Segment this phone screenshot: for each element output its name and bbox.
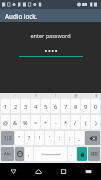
button[interactable]: +	[41, 115, 50, 129]
button[interactable]: Space	[34, 147, 67, 161]
staticText: 8	[74, 103, 78, 110]
button[interactable]: "	[15, 131, 24, 145]
button[interactable]: Done	[77, 147, 87, 161]
staticText: 6	[54, 103, 58, 110]
staticText: /	[74, 119, 77, 126]
staticText: 1	[4, 103, 8, 110]
staticText: 0	[94, 103, 98, 110]
button[interactable]: 6	[51, 99, 60, 113]
staticText: -	[55, 119, 57, 126]
staticText: 5	[44, 103, 48, 110]
button[interactable]: 7	[61, 99, 70, 113]
staticText: :	[59, 135, 61, 142]
staticText: ?	[28, 135, 31, 142]
staticText: !	[55, 93, 57, 98]
button[interactable]: ;	[65, 131, 74, 145]
button[interactable]: ,	[25, 147, 33, 161]
button[interactable]: *	[61, 115, 70, 129]
staticText: .	[71, 151, 73, 158]
button[interactable]: -	[51, 115, 60, 129]
staticText: %	[23, 119, 28, 126]
staticText: Abc	[4, 151, 12, 157]
button[interactable]: Symbols	[1, 131, 14, 145]
staticText: &	[13, 119, 18, 126]
staticText: 2	[14, 103, 18, 110]
staticText: 3	[24, 103, 28, 110]
staticText: 4	[34, 103, 38, 110]
button[interactable]: 9	[81, 99, 90, 113]
staticText: +	[44, 119, 48, 126]
staticText: enter password	[30, 32, 71, 39]
button[interactable]: Keyboard	[76, 163, 101, 180]
button[interactable]: =	[31, 115, 40, 129]
staticText: $	[95, 93, 98, 98]
button[interactable]: 3	[21, 99, 30, 113]
staticText: 7	[64, 103, 68, 110]
button[interactable]: )	[91, 115, 100, 129]
staticText: @	[74, 93, 78, 98]
staticText: 1|2	[4, 135, 12, 141]
button[interactable]: Recents	[51, 163, 76, 180]
staticText: "	[18, 135, 21, 142]
button[interactable]: &	[11, 115, 20, 129]
staticText: Audio lock.	[5, 12, 38, 20]
staticText: ?	[35, 93, 37, 98]
staticText: ,	[28, 151, 30, 158]
button[interactable]: Audio lock.	[0, 9, 101, 22]
button[interactable]: ?	[25, 131, 34, 145]
staticText: =	[34, 119, 38, 126]
button[interactable]: Backspace	[85, 131, 100, 145]
button[interactable]: (	[81, 115, 90, 129]
button[interactable]: Settings	[88, 147, 100, 161]
button[interactable]: Emoji	[15, 147, 24, 161]
button[interactable]: 4	[31, 99, 40, 113]
button[interactable]	[19, 48, 83, 57]
staticText: )	[95, 119, 97, 126]
staticText: _	[78, 135, 81, 142]
button[interactable]: 1	[1, 99, 10, 113]
button[interactable]: /	[71, 115, 80, 129]
staticText: @	[3, 119, 8, 126]
staticText: *	[64, 119, 68, 126]
staticText: 9	[84, 103, 88, 110]
staticText: !	[39, 135, 41, 142]
button[interactable]: %	[21, 115, 30, 129]
staticText: ·	[15, 93, 17, 98]
staticText: ;	[69, 135, 71, 142]
button[interactable]: Home	[26, 163, 51, 180]
button[interactable]: .	[68, 147, 76, 161]
button[interactable]: Back	[0, 163, 26, 180]
staticText: '	[49, 135, 51, 142]
button[interactable]: :	[55, 131, 64, 145]
button[interactable]: 8	[71, 99, 80, 113]
button[interactable]: 0	[91, 99, 100, 113]
staticText: (	[85, 119, 87, 126]
button[interactable]: Letters	[1, 147, 14, 161]
button[interactable]: _	[75, 131, 84, 145]
button[interactable]: 5	[41, 99, 50, 113]
button[interactable]: '	[45, 131, 54, 145]
button[interactable]: !	[35, 131, 44, 145]
button[interactable]: 2	[11, 99, 20, 113]
button[interactable]: @	[1, 115, 10, 129]
